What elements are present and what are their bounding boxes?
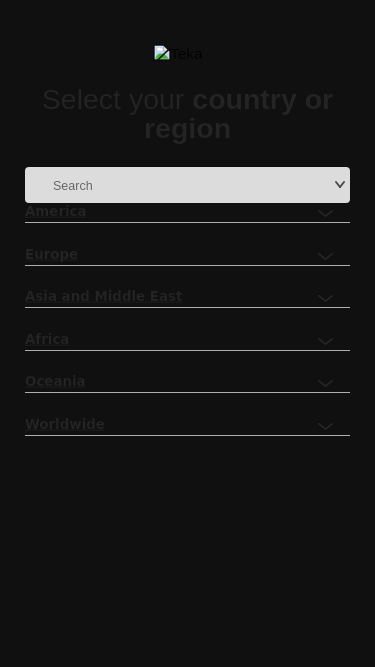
staticText: America bbox=[25, 204, 87, 220]
staticText: Select your country or region bbox=[22, 83, 353, 144]
button[interactable]: Worldwide bbox=[25, 416, 350, 459]
staticText: Oceania bbox=[25, 374, 86, 390]
button[interactable]: Oceania bbox=[25, 373, 350, 416]
button[interactable]: Africa bbox=[25, 331, 350, 374]
button[interactable]: Asia and Middle East bbox=[25, 288, 350, 331]
staticText: Asia and Middle East bbox=[25, 289, 183, 305]
staticText: Worldwide bbox=[25, 417, 105, 433]
button[interactable]: Search bbox=[25, 167, 350, 203]
staticText: Teka bbox=[170, 45, 203, 62]
staticText: Africa bbox=[25, 332, 70, 348]
staticText: Europe bbox=[25, 247, 79, 263]
button[interactable]: America bbox=[25, 203, 350, 246]
button[interactable]: Europe bbox=[25, 246, 350, 289]
staticText: Search bbox=[53, 179, 93, 193]
